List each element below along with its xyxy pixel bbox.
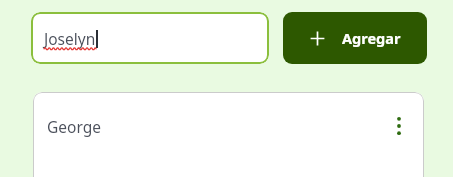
other: Agregar: [310, 31, 325, 46]
button[interactable]: Agregar: [283, 12, 427, 64]
button[interactable]: Joselyn: [31, 12, 269, 64]
staticText: George: [47, 116, 101, 137]
staticText: Agregar: [342, 28, 401, 48]
button[interactable]: George: [33, 92, 424, 160]
staticText: Joselyn: [44, 28, 96, 49]
button[interactable]: Más opciones: [386, 113, 412, 139]
